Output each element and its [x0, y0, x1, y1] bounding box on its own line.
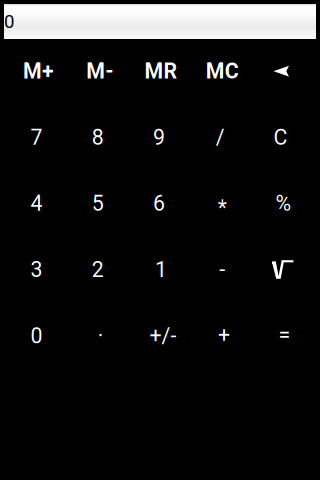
- button[interactable]: 8: [67, 104, 128, 171]
- staticText: -: [219, 257, 225, 282]
- button[interactable]: MC: [190, 38, 251, 104]
- staticText: MC: [206, 59, 239, 84]
- staticText: 0: [4, 11, 14, 32]
- button[interactable]: +: [190, 303, 251, 369]
- staticText: =: [278, 322, 290, 347]
- staticText: /: [216, 125, 225, 150]
- button[interactable]: *: [190, 170, 251, 237]
- button[interactable]: 7: [6, 104, 67, 171]
- button[interactable]: /: [190, 104, 251, 171]
- button[interactable]: =: [251, 303, 312, 369]
- staticText: M+: [23, 59, 54, 84]
- staticText: 9: [153, 125, 165, 150]
- button[interactable]: +/-: [128, 303, 190, 369]
- staticText: 5: [92, 191, 104, 216]
- staticText: +/-: [149, 323, 176, 348]
- staticText: 4: [31, 191, 43, 216]
- button[interactable]: %: [251, 170, 312, 237]
- staticText: 0: [31, 323, 43, 348]
- button[interactable]: Square root: [251, 237, 312, 303]
- button[interactable]: 5: [67, 170, 128, 237]
- staticText: 6: [153, 191, 165, 216]
- staticText: 7: [31, 125, 43, 150]
- staticText: 1: [155, 257, 167, 282]
- staticText: C: [273, 125, 287, 150]
- button[interactable]: 4: [6, 170, 67, 237]
- staticText: MR: [144, 59, 177, 84]
- button[interactable]: C: [251, 104, 312, 171]
- button[interactable]: 3: [6, 237, 67, 303]
- staticText: 2: [92, 257, 104, 282]
- button[interactable]: MR: [128, 38, 190, 104]
- button[interactable]: M-: [67, 38, 128, 104]
- button[interactable]: M+: [6, 38, 67, 104]
- button[interactable]: 2: [67, 237, 128, 303]
- button[interactable]: Backspace: [251, 38, 312, 104]
- button[interactable]: 0: [6, 303, 67, 369]
- staticText: M-: [86, 59, 113, 84]
- button[interactable]: 1: [128, 237, 190, 303]
- staticText: %: [275, 191, 291, 216]
- staticText: 3: [31, 257, 43, 282]
- staticText: +: [218, 323, 230, 348]
- staticText: *: [218, 196, 227, 221]
- button[interactable]: -: [190, 237, 251, 303]
- button[interactable]: 6: [128, 170, 190, 237]
- staticText: 8: [92, 125, 104, 150]
- button[interactable]: ·: [67, 303, 128, 369]
- button[interactable]: 9: [128, 104, 190, 171]
- staticText: ·: [98, 323, 104, 348]
